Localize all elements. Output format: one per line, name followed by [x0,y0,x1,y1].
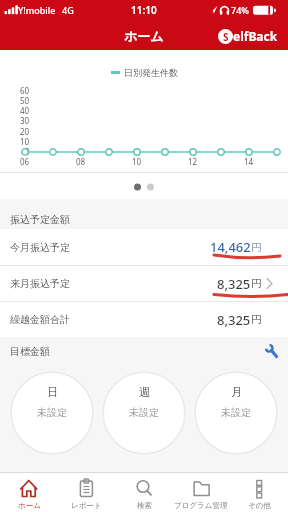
staticText: 週 [139,385,150,399]
staticText: 0 [25,146,30,157]
button[interactable]: プログラム管理 [172,473,230,512]
staticText: 08 [76,156,86,167]
staticText: Y!mobile [18,4,56,16]
staticText: ホーム [124,28,164,44]
button[interactable]: S [216,28,282,44]
staticText: 50 [20,95,30,106]
button[interactable]: 月 [194,371,278,455]
button[interactable]: 今月振込予定 [0,229,288,265]
staticText: 未設定 [221,406,251,419]
staticText: 10 [132,156,142,167]
staticText: 06 [20,156,30,167]
staticText: 74% [231,4,249,16]
staticText: elfBack [233,28,278,44]
staticText: 14 [244,156,254,167]
staticText: 12 [188,156,198,167]
staticText: 14,462 [210,238,251,256]
button[interactable] [260,340,284,364]
staticText: 月 [231,385,242,399]
staticText: 8,325 [217,311,251,329]
staticText: 円 [251,241,262,254]
staticText: 8,325 [217,275,251,293]
button[interactable]: 週 [102,371,186,455]
staticText: 40 [20,105,30,116]
staticText: 20 [20,126,30,137]
button[interactable]: 日 [10,371,94,455]
staticText: 円 [251,313,262,326]
staticText: 振込予定金額 [10,213,70,226]
staticText: 日別発生件数 [124,67,178,78]
staticText: 繰越金額合計 [10,313,70,326]
staticText: 4G [62,4,74,16]
staticText: 来月振込予定 [10,277,70,290]
staticText: レポート [71,501,102,510]
button[interactable]: レポート [57,473,115,512]
staticText: 30 [20,115,30,126]
staticText: S [223,30,229,44]
staticText: 未設定 [129,406,159,419]
staticText: 今月振込予定 [10,241,70,254]
staticText: 10 [20,136,30,147]
button[interactable]: 検索 [115,473,173,512]
staticText: 検索 [137,501,152,510]
staticText: 60 [20,85,30,96]
staticText: 円 [251,277,262,290]
staticText: 目標金額 [10,345,50,358]
button[interactable]: ホーム [0,473,58,512]
button[interactable]: その他 [230,473,288,512]
staticText: ホーム [18,501,41,510]
staticText: プログラム管理 [174,501,228,510]
staticText: 11:10 [131,3,157,17]
staticText: 未設定 [37,406,67,419]
staticText: 日 [47,385,58,399]
button[interactable]: 来月振込予定 [0,266,288,301]
staticText: その他 [248,501,271,510]
